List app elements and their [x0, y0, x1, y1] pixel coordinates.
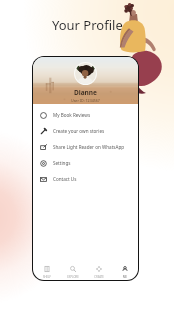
button[interactable]: Settings	[33, 155, 138, 171]
staticText: ME	[123, 275, 127, 279]
button[interactable]: My Book Reviews	[33, 107, 138, 123]
staticText: Dianne	[74, 88, 97, 97]
staticText: Share Light Reader on WhatsApp	[53, 144, 125, 150]
staticText: My Book Reviews	[53, 112, 91, 118]
staticText: CREATE	[94, 275, 104, 279]
staticText: SHELF	[43, 275, 51, 279]
button[interactable]: Contact Us	[33, 171, 138, 187]
staticText: Create your own stories	[53, 128, 105, 134]
staticText: Settings	[53, 160, 71, 166]
staticText: EXPLORE	[67, 275, 79, 279]
button[interactable]: Me tab	[112, 258, 138, 279]
button[interactable]: Create your own stories	[33, 123, 138, 139]
button[interactable]: Create tab	[86, 258, 112, 279]
staticText: Contact Us	[53, 176, 77, 182]
staticText: Your Profile	[52, 16, 123, 34]
button[interactable]: Shelf tab	[33, 258, 60, 279]
button[interactable]: Explore tab	[60, 258, 86, 279]
button[interactable]: Share Light Reader on WhatsApp	[33, 139, 138, 155]
staticText: User ID: 1234567	[71, 98, 100, 103]
